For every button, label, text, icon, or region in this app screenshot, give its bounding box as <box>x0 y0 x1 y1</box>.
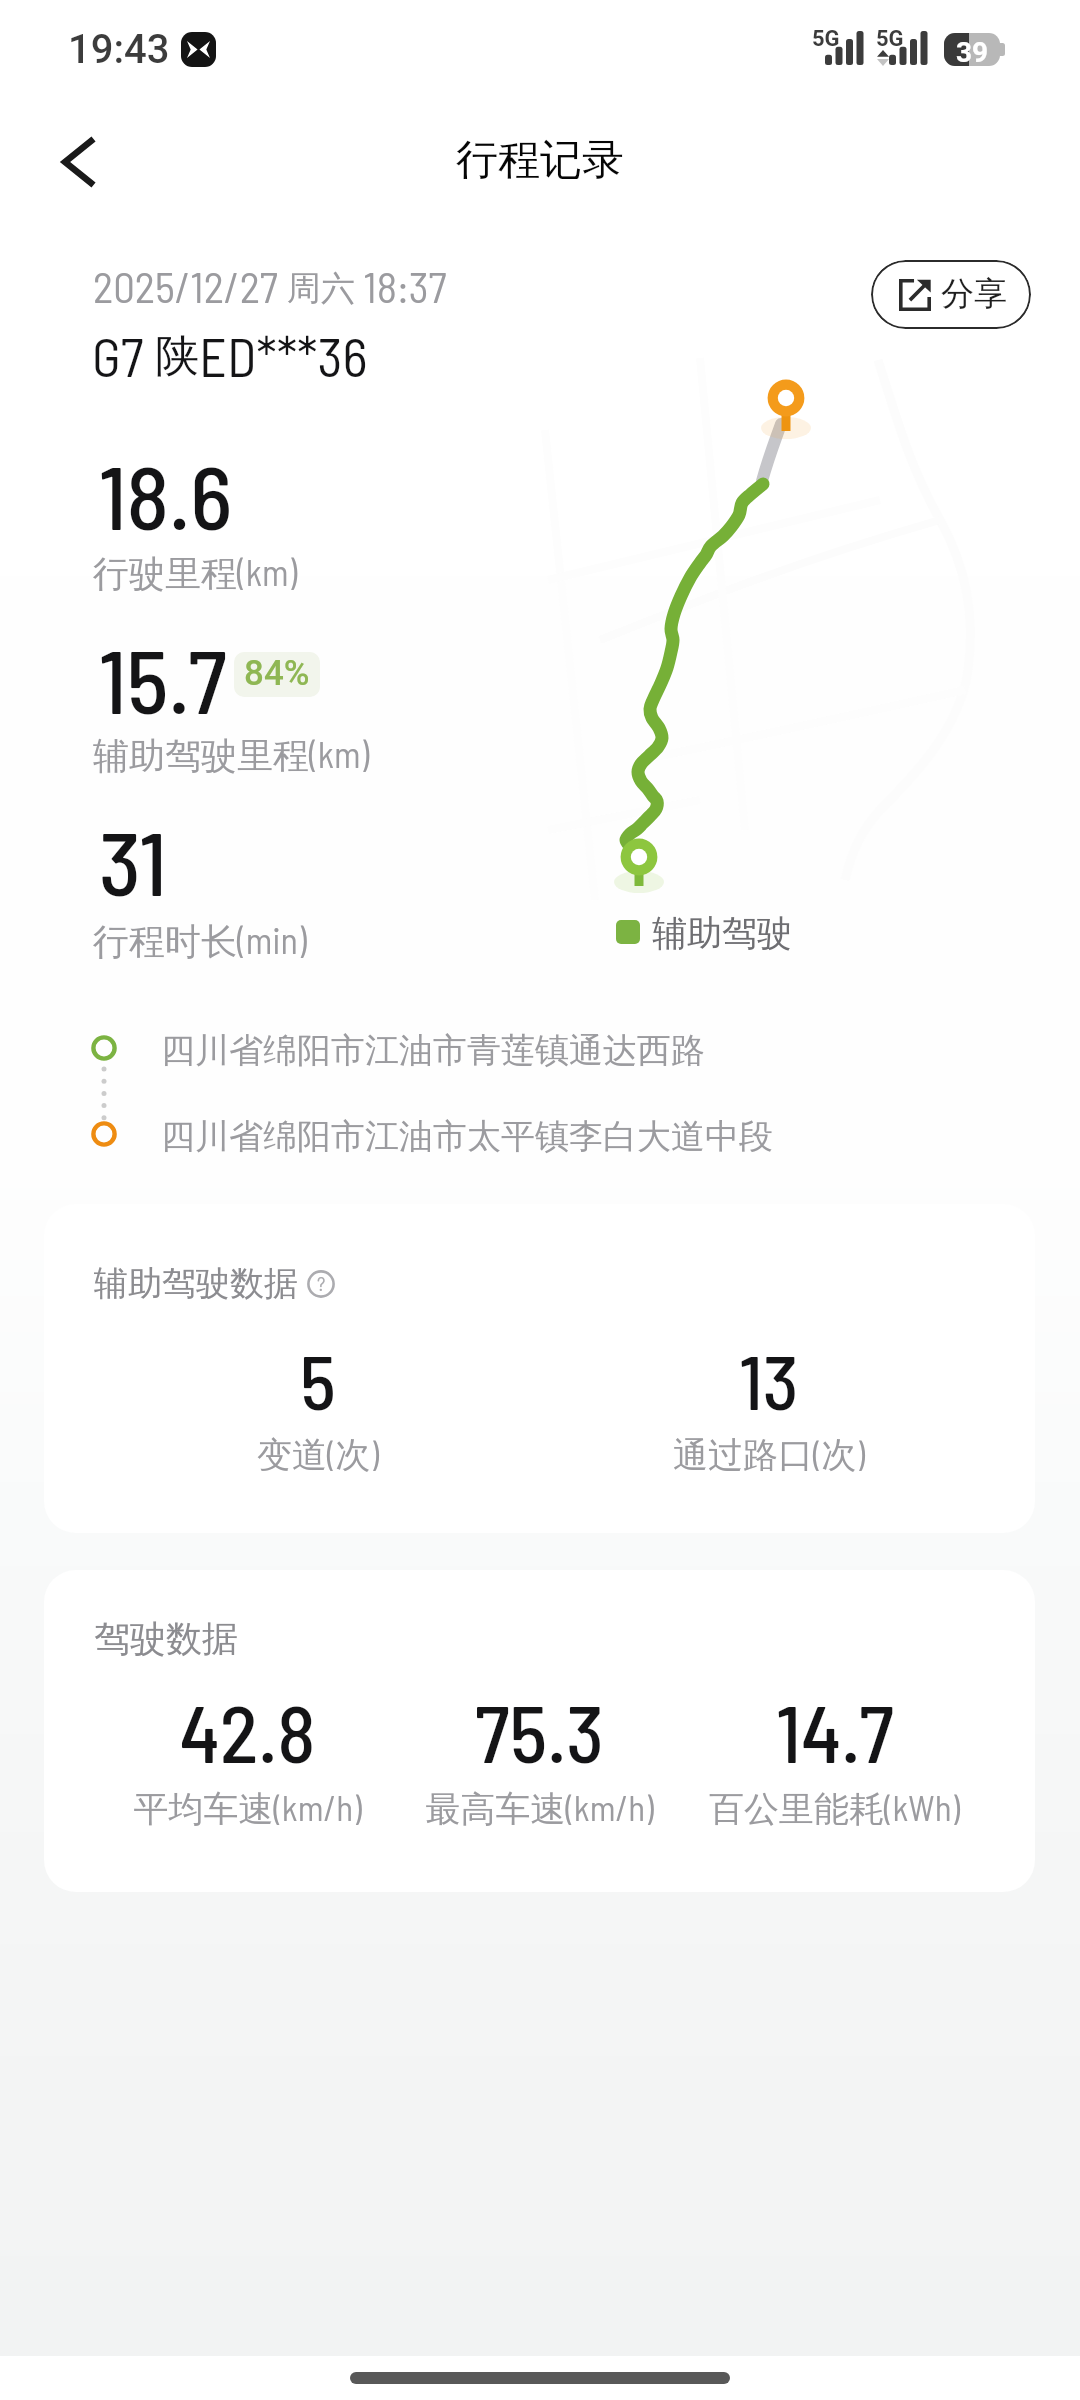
staticText: 最高车速(km/h) <box>425 1786 654 1831</box>
button[interactable]: 驾驶数据 <box>44 1570 1035 1892</box>
staticText: 行程记录 <box>456 134 624 187</box>
staticText: 84% <box>244 653 310 694</box>
staticText: 13 <box>739 1334 799 1425</box>
staticText: 2025/12/27 <box>93 260 287 312</box>
staticText: 驾驶数据 <box>94 1616 238 1661</box>
staticText: G7 <box>92 323 155 388</box>
staticText: 辅助驾驶数据 <box>94 1262 298 1305</box>
staticText: 15.7 <box>99 625 227 732</box>
button[interactable]: 分享 <box>871 260 1031 329</box>
staticText: 75.3 <box>475 1683 604 1779</box>
button[interactable]: Help about assisted driving data <box>307 1270 335 1298</box>
staticText: 辅助驾驶里程(km) <box>93 732 370 779</box>
staticText: 百公里能耗(kWh) <box>709 1786 960 1831</box>
staticText: 31 <box>99 807 167 914</box>
staticText: 5 <box>300 1334 336 1425</box>
staticText: 周六 <box>287 267 355 310</box>
staticText: 18.6 <box>99 441 233 548</box>
staticText: 39 <box>956 36 989 69</box>
staticText: 5G <box>876 26 904 52</box>
staticText: 行驶里程(km) <box>93 550 298 597</box>
staticText: 辅助驾驶 <box>652 911 792 955</box>
staticText: 平均车速(km/h) <box>133 1786 362 1831</box>
staticText: 19:43 <box>68 26 170 73</box>
staticText: 陕 <box>155 329 199 384</box>
staticText: 行程时长(min) <box>93 918 307 965</box>
staticText: 5G <box>812 26 840 52</box>
staticText: 四川省绵阳市江油市太平镇李白大道中段 <box>161 1115 773 1158</box>
staticText: 18:37 <box>355 260 447 312</box>
staticText: 变道(次) <box>257 1432 379 1477</box>
staticText: 四川省绵阳市江油市青莲镇通达西路 <box>161 1029 705 1072</box>
staticText: ? <box>317 1271 326 1295</box>
button[interactable]: Back <box>36 120 120 204</box>
staticText: 通过路口(次) <box>673 1432 865 1477</box>
staticText: 14.7 <box>776 1683 894 1779</box>
staticText: 42.8 <box>179 1683 316 1779</box>
staticText: 分享 <box>941 273 1007 315</box>
button[interactable]: 辅助驾驶数据 <box>44 1204 1035 1533</box>
staticText: ED***36 <box>199 323 368 388</box>
